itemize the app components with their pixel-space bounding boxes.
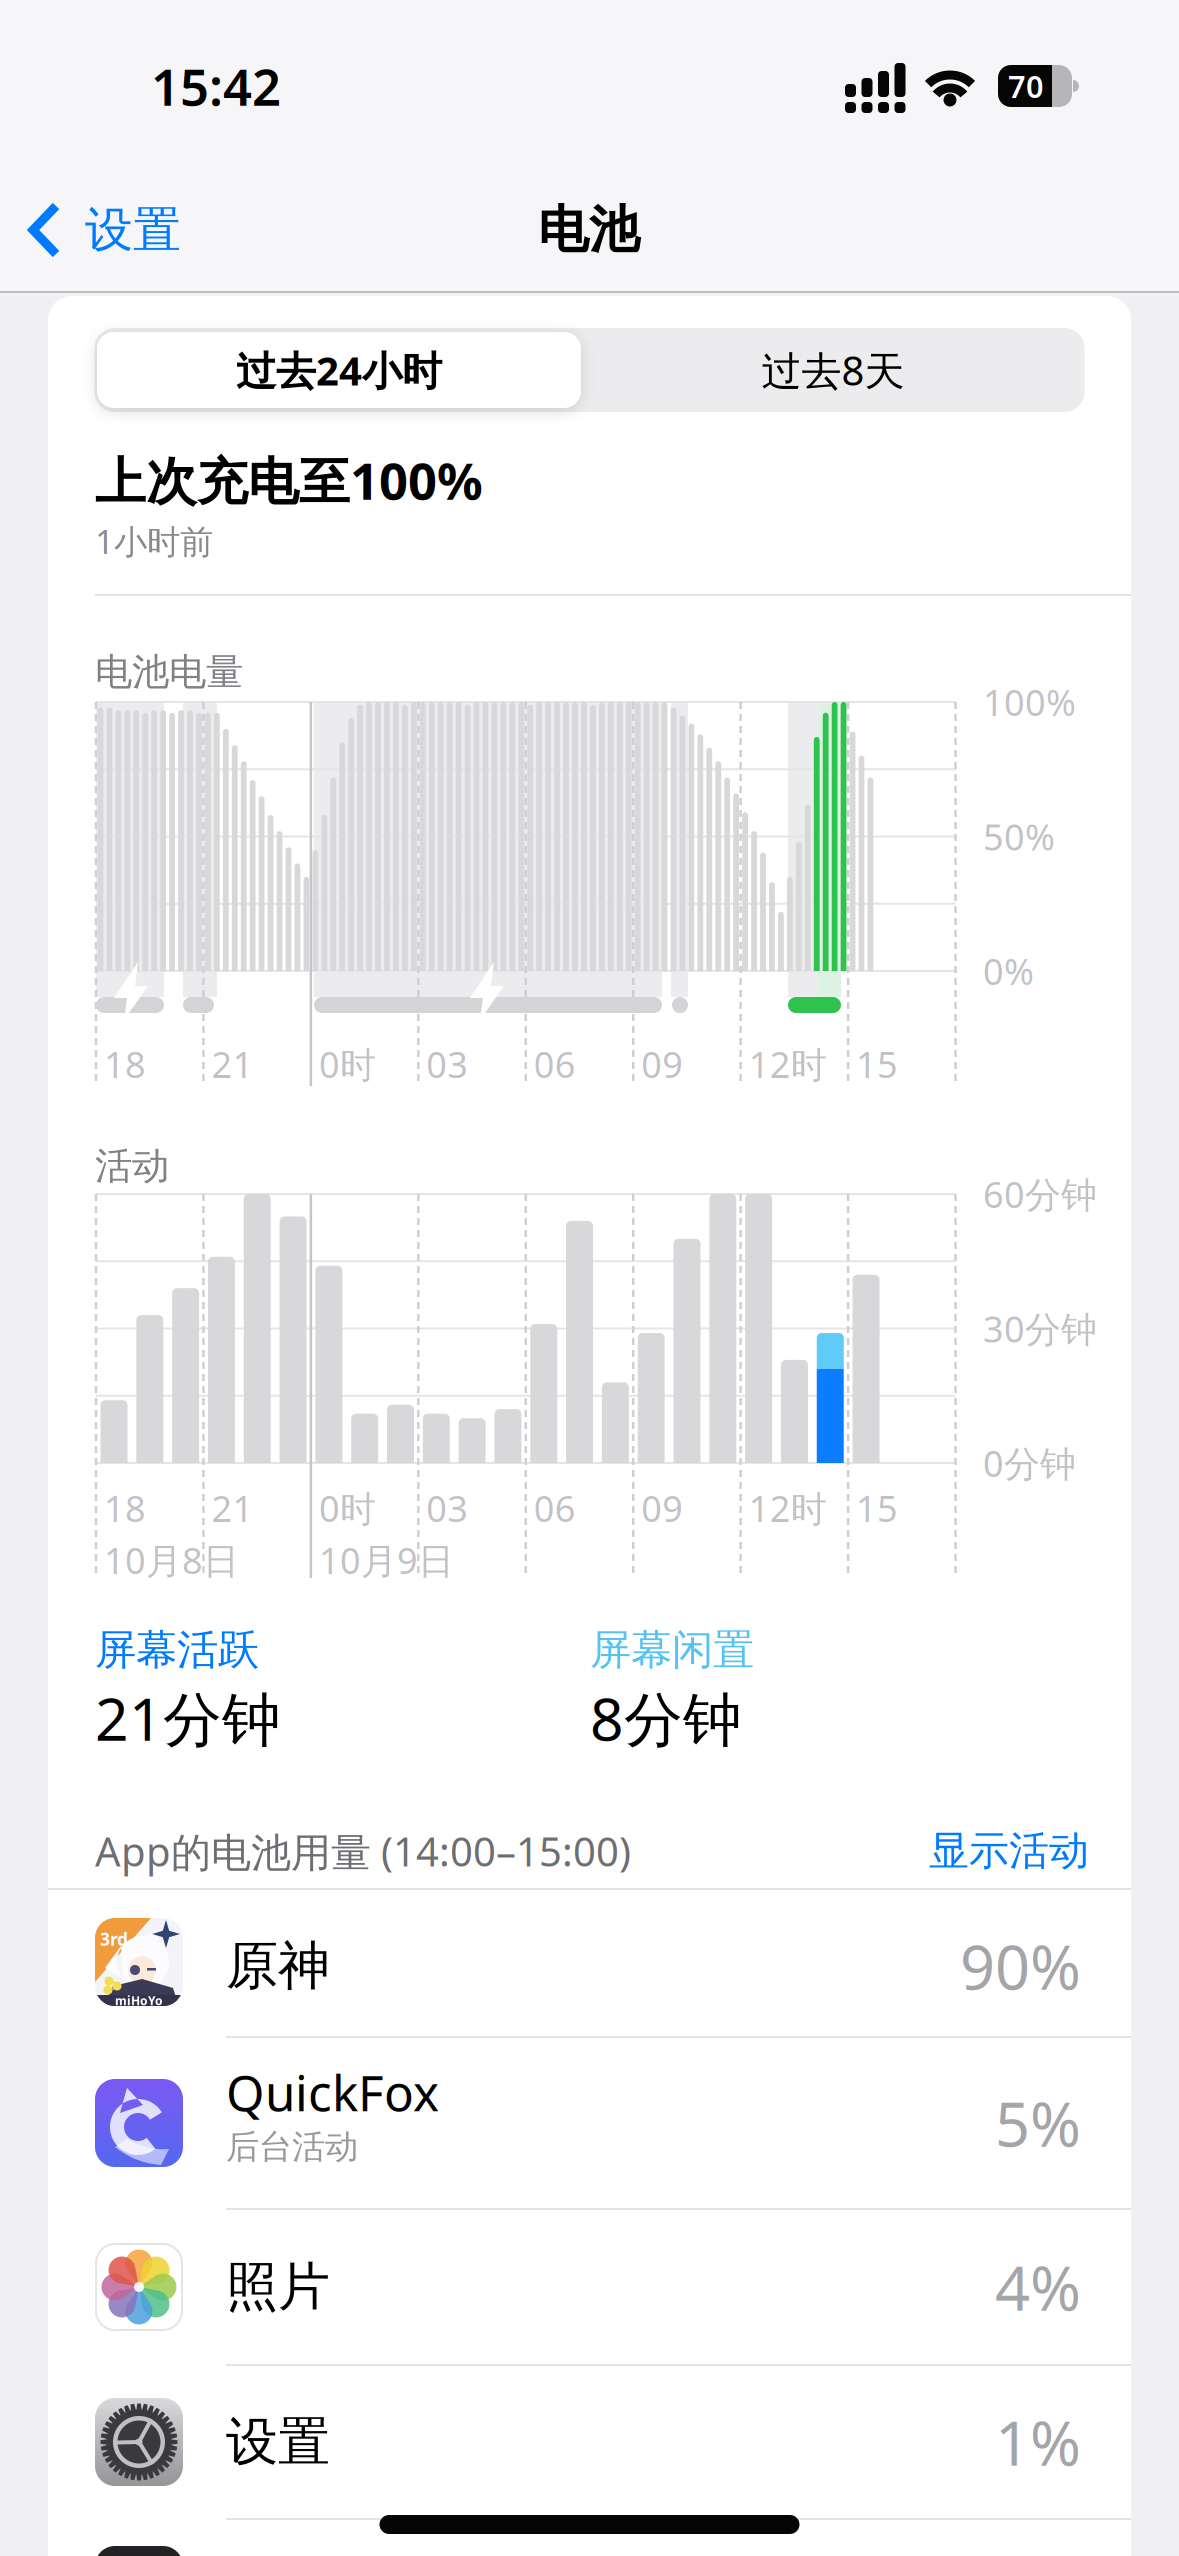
staticText: 18 [104, 1484, 146, 1532]
button[interactable]: miHoYo [48, 1888, 1131, 2036]
staticText: 0时 [319, 1484, 376, 1532]
staticText: 5% [995, 2082, 1081, 2164]
staticText: 1% [995, 2401, 1081, 2483]
staticText: 10月8日 [104, 1536, 239, 1584]
button[interactable]: 返回设置 [23, 199, 223, 261]
staticText: App的电池用量 (14:00–15:00) [95, 1824, 631, 1878]
staticText: 30分钟 [983, 1305, 1097, 1352]
staticText: 后台活动 [226, 2126, 358, 2167]
staticText: 03 [426, 1484, 468, 1532]
staticText: 屏幕闲置 [590, 1625, 754, 1675]
staticText: 15:42 [151, 52, 281, 120]
button[interactable]: 过去8天 [585, 328, 1080, 412]
button[interactable]: 过去24小时 [91, 328, 586, 412]
staticText: 06 [534, 1040, 576, 1088]
staticText: 03 [426, 1040, 468, 1088]
staticText: 100% [983, 678, 1076, 726]
staticText: 活动 [95, 1143, 169, 1189]
staticText: 设置 [85, 200, 181, 259]
staticText: 过去24小时 [236, 343, 442, 396]
staticText: 4% [995, 2246, 1081, 2328]
staticText: 70 [1008, 66, 1044, 106]
staticText: 12时 [749, 1040, 827, 1088]
staticText: 过去8天 [761, 343, 904, 396]
staticText: 照片 [226, 2255, 330, 2319]
staticText: 90% [960, 1925, 1081, 2007]
staticText: 0时 [319, 1040, 376, 1088]
staticText: 0% [983, 947, 1034, 995]
staticText: 21 [211, 1040, 253, 1088]
staticText: 60分钟 [983, 1170, 1097, 1218]
staticText: QuickFox [226, 2059, 439, 2125]
staticText: 09 [641, 1484, 683, 1532]
button[interactable]: 设置 [48, 2365, 1131, 2519]
staticText: 21分钟 [95, 1679, 281, 1757]
staticText: 显示活动 [929, 1826, 1089, 1875]
staticText: 电池电量 [95, 649, 243, 695]
staticText: 设置 [226, 2410, 330, 2474]
staticText: 21 [211, 1484, 253, 1532]
staticText: 50% [983, 813, 1055, 860]
staticText: 12时 [749, 1484, 827, 1532]
button[interactable]: 显示活动 [929, 1826, 1089, 1875]
staticText: 18 [104, 1040, 146, 1088]
staticText: 电池 [538, 199, 640, 261]
staticText: 上次充电至100% [95, 446, 483, 514]
staticText: 10月9日 [319, 1536, 454, 1584]
staticText: 1小时前 [95, 519, 213, 563]
staticText: 06 [534, 1484, 576, 1532]
staticText: 原神 [226, 1934, 330, 1998]
staticText: 8分钟 [590, 1679, 742, 1757]
button[interactable]: 照片 [48, 2209, 1131, 2365]
staticText: 屏幕活跃 [95, 1625, 259, 1675]
staticText: 15 [856, 1040, 898, 1088]
staticText: 09 [641, 1040, 683, 1088]
staticText: miHoYo [115, 1992, 163, 2008]
staticText: 3rd [100, 1927, 128, 1950]
staticText: 15 [856, 1484, 898, 1532]
button[interactable]: QuickFox [48, 2037, 1131, 2209]
staticText: 0分钟 [983, 1439, 1076, 1487]
